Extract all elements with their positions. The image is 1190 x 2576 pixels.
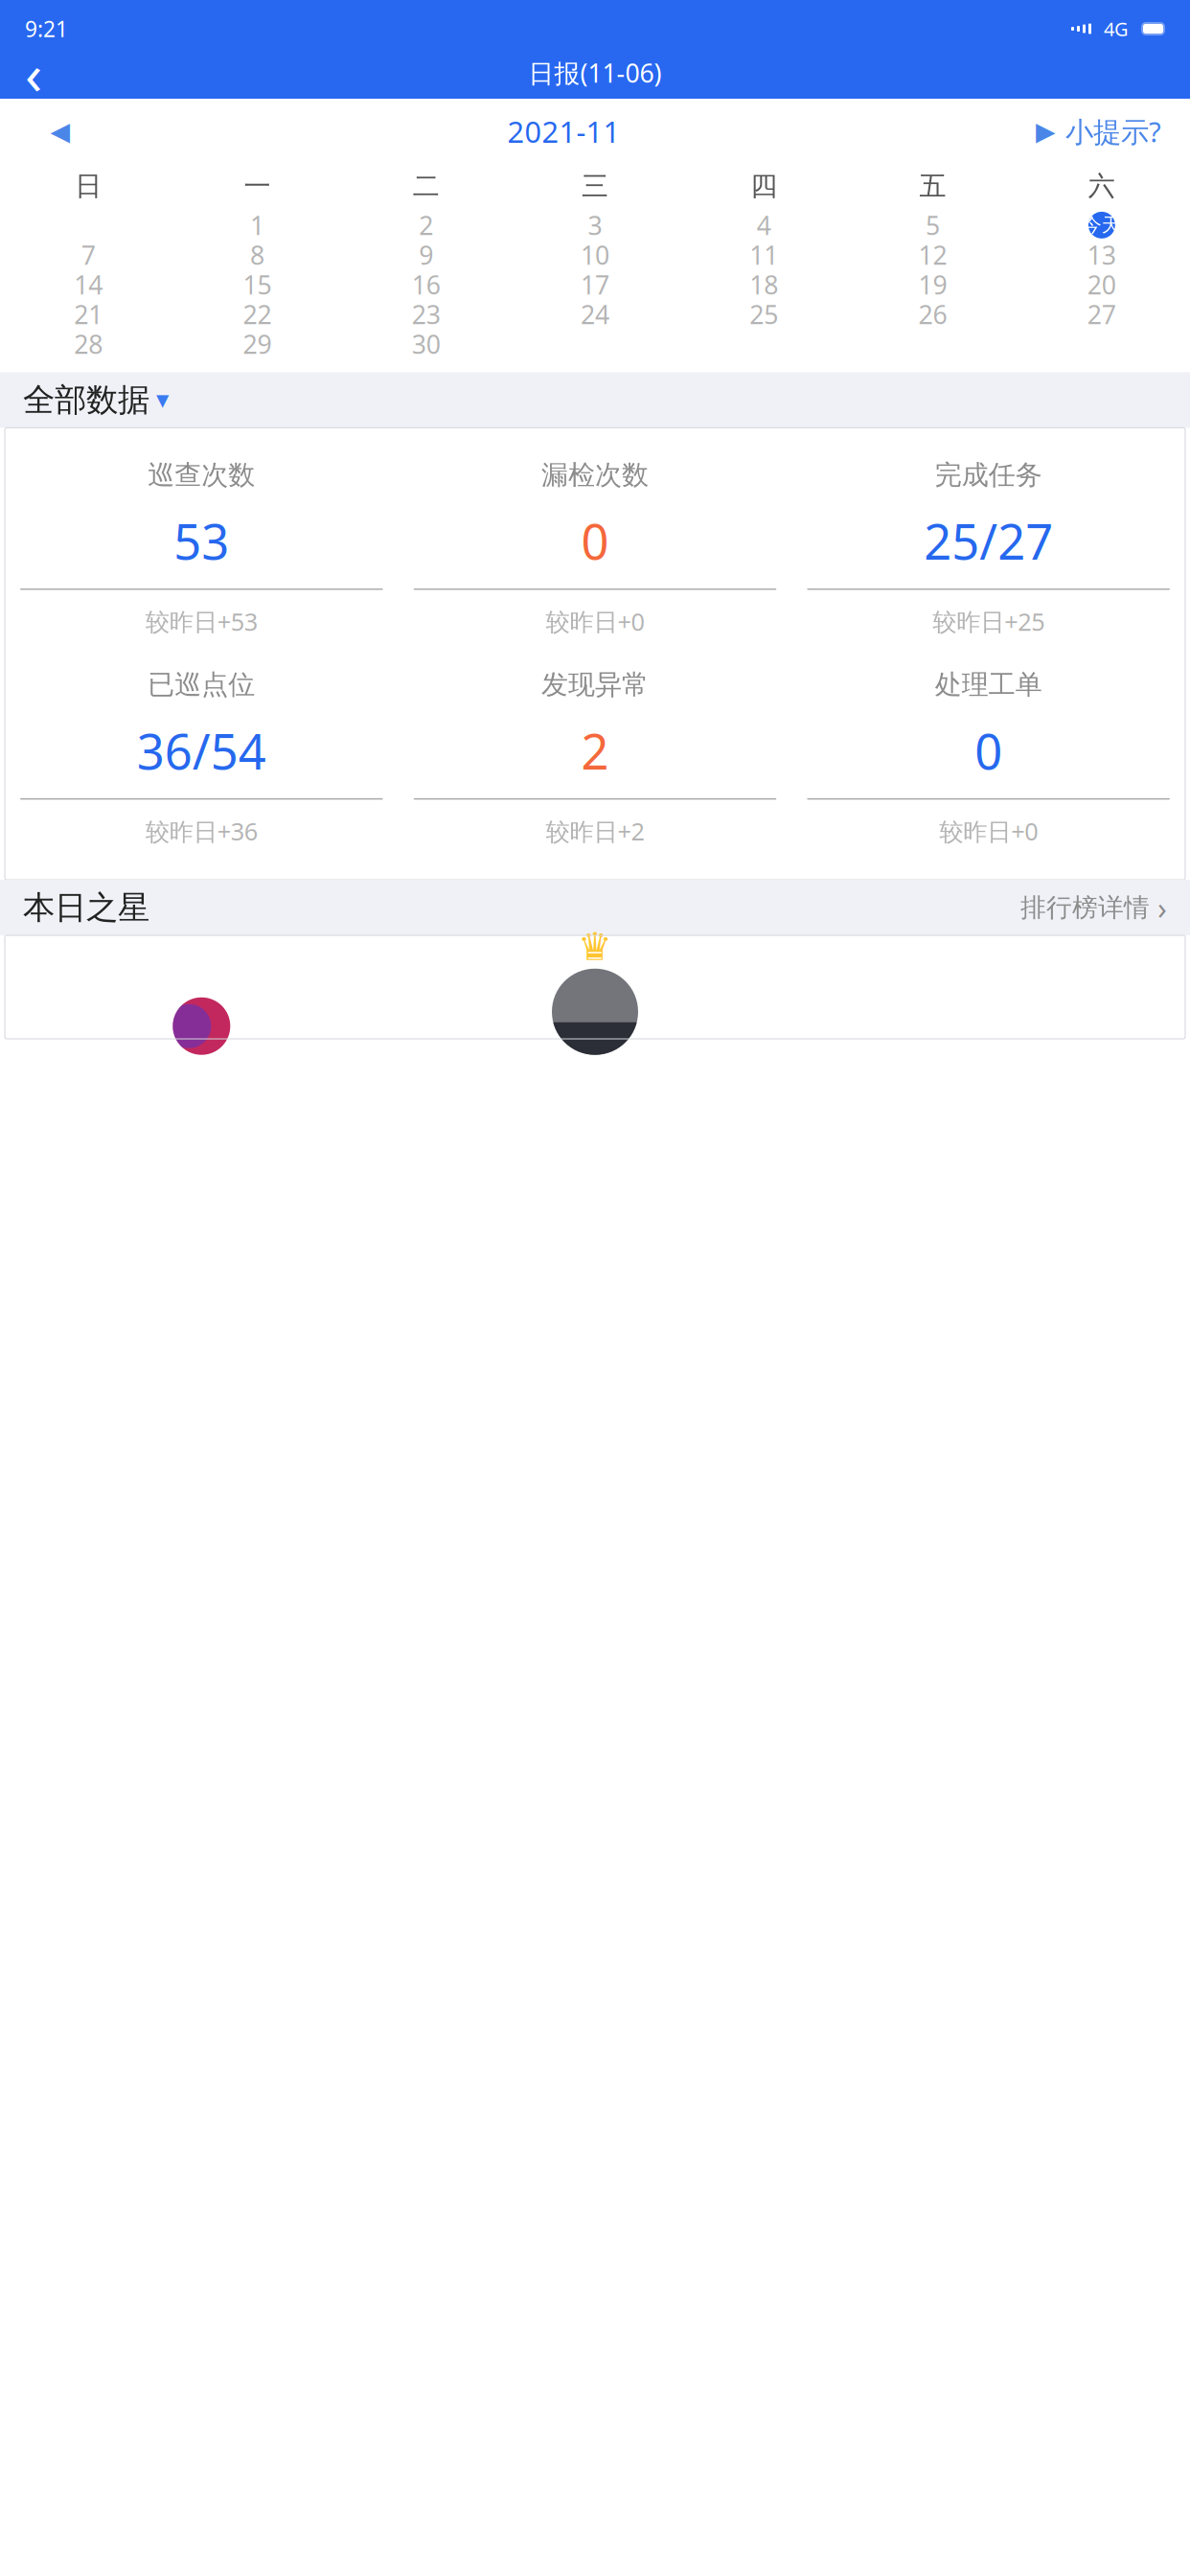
staticText: ▼ [156,391,169,409]
button[interactable]: 26 [848,299,1017,329]
button[interactable]: 9 [342,240,511,270]
button[interactable]: 12 [848,240,1017,270]
button[interactable]: 7 [4,240,173,270]
staticText: 13 [1087,238,1116,272]
button[interactable]: ▶ [1036,110,1161,152]
staticText: 14 [74,268,103,301]
button[interactable]: 23 [342,299,511,329]
button[interactable]: 29 [173,329,342,359]
staticText: 4 [757,208,771,242]
staticText: 2 [581,718,609,783]
staticText: 30 [412,327,440,361]
button[interactable]: 2 [342,210,511,240]
staticText: 已巡点位 [148,668,255,701]
staticText: 一 [244,170,271,203]
staticText: 25 [750,297,778,331]
staticText: 1 [250,208,264,242]
button[interactable]: 25 [679,299,848,329]
staticText: 2021-11 [507,112,620,151]
button[interactable]: 16 [342,270,511,299]
button[interactable]: 上个月 [29,110,92,152]
button[interactable]: 8 [173,240,342,270]
staticText: 29 [243,327,272,361]
staticText: 24 [581,297,609,331]
button[interactable]: 18 [679,270,848,299]
staticText: 较昨日+2 [546,815,644,847]
staticText: 六 [1088,170,1115,203]
button[interactable]: 21 [4,299,173,329]
button[interactable]: 24 [511,299,680,329]
button[interactable]: 10 [511,240,680,270]
button[interactable]: 排行榜详情 [1020,887,1167,928]
staticText: 3 [588,208,602,242]
staticText: 7 [81,238,95,272]
button[interactable]: 4 [679,210,848,240]
button[interactable]: 3 [511,210,680,240]
staticText: 26 [918,297,947,331]
button[interactable]: 30 [342,329,511,359]
button[interactable]: 27 [1017,299,1186,329]
staticText: 日 [75,170,102,203]
staticText: 日报(11-06) [528,56,662,90]
staticText: 27 [1087,297,1116,331]
button[interactable]: 第一名 [552,925,638,1055]
staticText: 18 [750,268,778,301]
staticText: 处理工单 [935,668,1042,701]
staticText: ♛ [578,925,612,969]
staticText: ▶ [1036,117,1056,146]
staticText: 0 [975,718,1002,783]
staticText: 23 [412,297,440,331]
button[interactable]: 5 [848,210,1017,240]
button[interactable]: 20 [1017,270,1186,299]
staticText: 53 [174,509,229,573]
staticText: 17 [581,268,609,301]
button[interactable]: 22 [173,299,342,329]
staticText: 全部数据 [23,380,149,420]
button[interactable]: 今天 [1017,210,1186,240]
staticText: 较昨日+53 [145,605,258,637]
staticText: 四 [751,170,777,203]
staticText: 36/54 [137,718,266,783]
staticText: 较昨日+36 [145,815,258,847]
button[interactable]: 19 [848,270,1017,299]
staticText: 较昨日+0 [939,815,1038,847]
button[interactable]: 15 [173,270,342,299]
staticText: 8 [250,238,264,272]
staticText: ‹ [25,35,42,110]
staticText: 巡查次数 [148,458,255,491]
staticText: 0 [581,509,609,573]
staticText: 22 [243,297,272,331]
staticText: 9:21 [25,14,68,43]
button[interactable]: 第二名 [173,997,230,1055]
staticText: 较昨日+25 [932,605,1045,637]
staticText: 小提示? [1065,113,1161,150]
staticText: 本日之星 [23,888,149,927]
staticText: 19 [918,268,947,301]
staticText: 今天 [1083,213,1121,237]
staticText: › [1157,887,1167,928]
staticText: 较昨日+0 [546,605,644,637]
button[interactable]: 返回 [6,50,61,96]
staticText: 12 [918,238,947,272]
staticText: 9 [419,238,433,272]
staticText: 21 [74,297,103,331]
button[interactable]: 全部数据 [0,372,1190,428]
button[interactable]: 13 [1017,240,1186,270]
button[interactable]: 17 [511,270,680,299]
staticText: 16 [412,268,440,301]
button[interactable]: 1 [173,210,342,240]
staticText: 2 [419,208,433,242]
button[interactable]: 11 [679,240,848,270]
button[interactable]: 28 [4,329,173,359]
staticText: 5 [926,208,940,242]
staticText: 11 [750,238,778,272]
staticText: 排行榜详情 [1020,892,1150,923]
button[interactable]: 14 [4,270,173,299]
staticText: 25/27 [924,509,1053,573]
staticText: 漏检次数 [541,458,649,491]
